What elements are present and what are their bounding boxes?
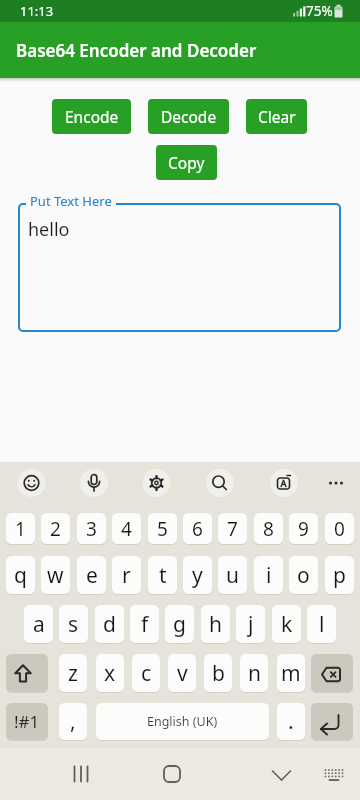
staticText: 8 — [263, 516, 274, 542]
button[interactable]: 2 — [41, 513, 70, 544]
staticText: d — [103, 610, 116, 639]
staticText: v — [177, 659, 188, 688]
button[interactable] — [261, 753, 303, 795]
button[interactable]: Base64 Encoder and Decoder — [0, 22, 360, 78]
button[interactable]: n — [240, 654, 268, 692]
staticText: r — [122, 561, 131, 590]
button[interactable]: h — [201, 605, 230, 643]
button[interactable]: y — [183, 556, 212, 594]
staticText: a — [33, 610, 45, 639]
staticText: 0 — [334, 516, 345, 542]
button[interactable] — [268, 467, 300, 499]
button[interactable]: Decode — [148, 99, 229, 134]
button[interactable]: m — [277, 654, 305, 692]
staticText: z — [68, 659, 78, 688]
staticText: b — [212, 659, 225, 688]
button[interactable]: 1 — [6, 513, 35, 544]
button[interactable]: j — [236, 605, 265, 643]
button[interactable]: i — [254, 556, 283, 594]
button[interactable]: o — [289, 556, 318, 594]
staticText: x — [104, 659, 116, 688]
staticText: l — [319, 610, 325, 639]
button[interactable]: 8 — [254, 513, 283, 544]
staticText: !#1 — [14, 710, 40, 733]
button[interactable]: Copy — [156, 145, 217, 180]
staticText: . — [288, 707, 294, 736]
button[interactable] — [16, 467, 48, 499]
button[interactable]: , — [59, 703, 87, 740]
button[interactable]: t — [148, 556, 177, 594]
button[interactable] — [311, 654, 353, 692]
staticText: h — [209, 610, 222, 639]
button[interactable]: l — [307, 605, 336, 643]
staticText: English (UK) — [147, 713, 218, 730]
button[interactable] — [204, 467, 236, 499]
button[interactable]: w — [41, 556, 70, 594]
button[interactable]: !#1 — [6, 703, 48, 740]
staticText: 4 — [121, 516, 132, 542]
button[interactable] — [311, 703, 353, 740]
staticText: g — [173, 610, 186, 639]
button[interactable] — [78, 467, 110, 499]
button[interactable]: s — [59, 605, 88, 643]
staticText: i — [266, 561, 272, 590]
button[interactable]: x — [96, 654, 124, 692]
button[interactable] — [320, 467, 352, 499]
button[interactable]: a — [24, 605, 53, 643]
button[interactable]: d — [95, 605, 124, 643]
button[interactable]: u — [218, 556, 247, 594]
button[interactable] — [141, 467, 173, 499]
button[interactable]: c — [132, 654, 160, 692]
button[interactable] — [6, 654, 48, 692]
button[interactable]: . — [277, 703, 305, 740]
staticText: Decode — [161, 106, 217, 127]
staticText: 3 — [86, 516, 97, 542]
button[interactable]: q — [6, 556, 35, 594]
button[interactable]: 9 — [289, 513, 318, 544]
button[interactable]: f — [130, 605, 159, 643]
button[interactable]: 3 — [77, 513, 106, 544]
staticText: Copy — [168, 152, 205, 173]
staticText: j — [248, 610, 254, 639]
button[interactable]: b — [204, 654, 232, 692]
staticText: 2 — [50, 516, 61, 542]
staticText: hello — [28, 217, 70, 242]
staticText: Encode — [65, 106, 119, 127]
button[interactable]: z — [59, 654, 87, 692]
button[interactable]: 4 — [112, 513, 141, 544]
staticText: t — [159, 561, 167, 590]
button[interactable]: g — [165, 605, 194, 643]
button[interactable]: 6 — [183, 513, 212, 544]
button[interactable]: p — [325, 556, 354, 594]
button[interactable]: English (UK) — [96, 703, 269, 740]
button[interactable]: r — [112, 556, 141, 594]
staticText: 1 — [15, 516, 26, 542]
staticText: w — [47, 561, 64, 590]
button[interactable]: v — [168, 654, 196, 692]
staticText: k — [281, 610, 293, 639]
button[interactable]: 0 — [325, 513, 354, 544]
staticText: m — [281, 659, 301, 688]
button[interactable] — [60, 753, 102, 795]
staticText: 9 — [298, 516, 309, 542]
button[interactable]: 5 — [148, 513, 177, 544]
button[interactable]: k — [272, 605, 301, 643]
button[interactable]: Clear — [246, 99, 307, 134]
button[interactable] — [313, 753, 355, 795]
staticText: Put Text Here — [30, 192, 112, 210]
staticText: u — [226, 561, 239, 590]
staticText: 7 — [227, 516, 238, 542]
button[interactable]: 7 — [218, 513, 247, 544]
button[interactable] — [151, 753, 193, 795]
staticText: e — [86, 561, 98, 590]
staticText: f — [141, 610, 149, 639]
staticText: o — [297, 561, 310, 590]
button[interactable]: Encode — [52, 99, 131, 134]
button[interactable]: e — [77, 556, 106, 594]
staticText: 11:13 — [20, 2, 54, 20]
staticText: Base64 Encoder and Decoder — [16, 39, 257, 62]
staticText: q — [14, 561, 27, 590]
staticText: 75% — [306, 2, 333, 20]
button[interactable] — [18, 203, 341, 332]
staticText: n — [248, 659, 261, 688]
